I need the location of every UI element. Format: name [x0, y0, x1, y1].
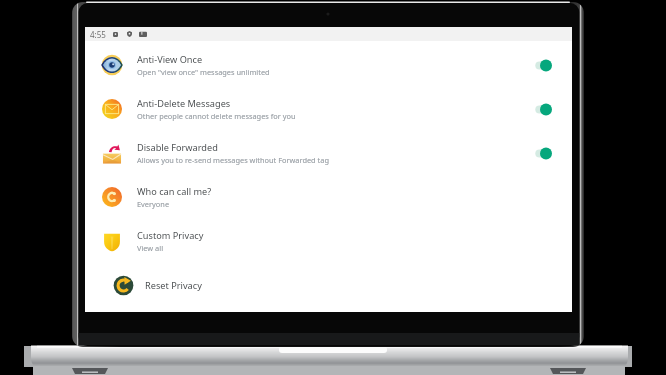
button[interactable]: Reset Privacy [85, 263, 572, 307]
staticText: Other people cannot delete messages for … [137, 111, 296, 121]
staticText: Who can call me? [137, 185, 212, 198]
staticText: Everyone [137, 199, 170, 209]
staticText: Open "view once" messages unlimited [137, 67, 270, 77]
staticText: Allows you to re-send messages without F… [137, 155, 329, 165]
staticText: Reset Privacy [145, 279, 202, 292]
button[interactable]: Toggle setting [534, 147, 552, 160]
staticText: 4:55 [90, 29, 106, 40]
button[interactable]: Disable Forwarded [85, 131, 572, 175]
button[interactable]: Toggle setting [534, 59, 552, 72]
button[interactable]: Who can call me? [85, 175, 572, 219]
button[interactable]: Custom Privacy [85, 219, 572, 263]
button[interactable]: Toggle setting [534, 103, 552, 116]
button[interactable]: Anti-View Once [85, 43, 572, 87]
staticText: View all [137, 243, 164, 253]
staticText: Custom Privacy [137, 229, 204, 242]
staticText: Anti-Delete Messages [137, 97, 231, 110]
staticText: Disable Forwarded [137, 141, 218, 154]
staticText: Anti-View Once [137, 53, 203, 66]
button[interactable]: Anti-Delete Messages [85, 87, 572, 131]
